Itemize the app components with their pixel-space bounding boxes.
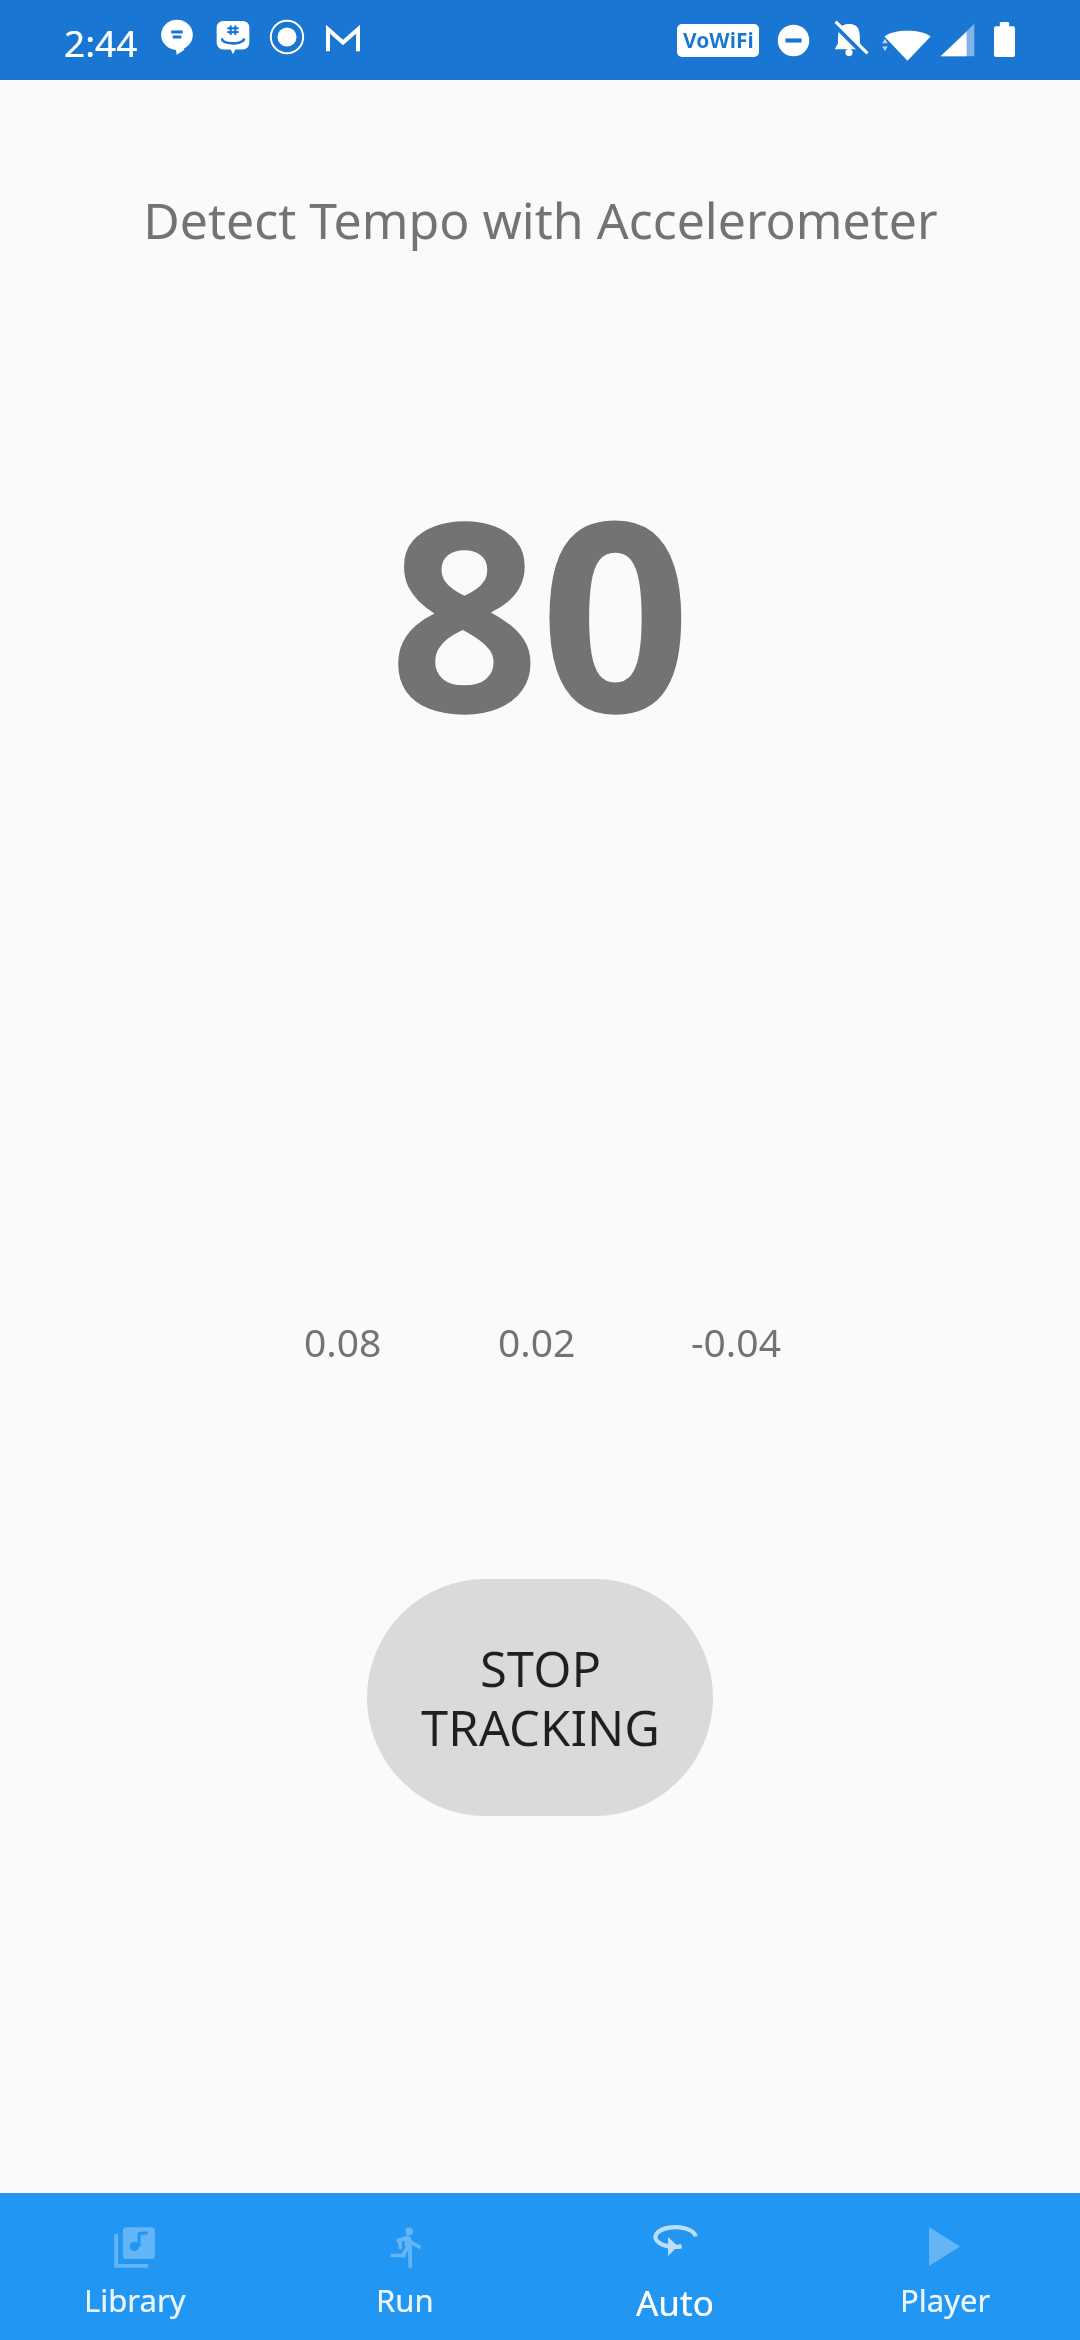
other: Silent <box>828 19 870 61</box>
staticText: 0.02 <box>498 1315 576 1368</box>
button[interactable]: Player <box>810 2193 1080 2340</box>
button[interactable]: Auto <box>540 2193 810 2340</box>
button[interactable]: Run <box>270 2193 540 2340</box>
other: Gmail <box>324 19 362 57</box>
staticText: VoWiFi <box>683 26 754 55</box>
staticText: Detect Tempo with Accelerometer <box>143 186 938 254</box>
other: Battery full <box>994 22 1015 57</box>
staticText: 2:44 <box>64 17 138 67</box>
staticText: Library <box>84 2279 186 2321</box>
staticText: Player <box>900 2279 991 2321</box>
other: Messages <box>159 19 195 55</box>
other: Screen recording <box>269 19 305 55</box>
button[interactable]: Library <box>0 2193 270 2340</box>
other: Do not disturb <box>776 23 811 58</box>
staticText: Run <box>376 2279 434 2321</box>
staticText: 0.08 <box>304 1315 382 1368</box>
button[interactable]: STOP TRACKING <box>367 1579 713 1816</box>
other: Chat <box>214 19 252 57</box>
other: Wi-Fi <box>880 19 935 74</box>
other: Mobile signal <box>940 23 975 57</box>
staticText: STOP TRACKING <box>421 1635 660 1761</box>
staticText: -0.04 <box>691 1315 781 1368</box>
staticText: 80 <box>389 430 692 790</box>
staticText: Auto <box>636 2279 714 2327</box>
